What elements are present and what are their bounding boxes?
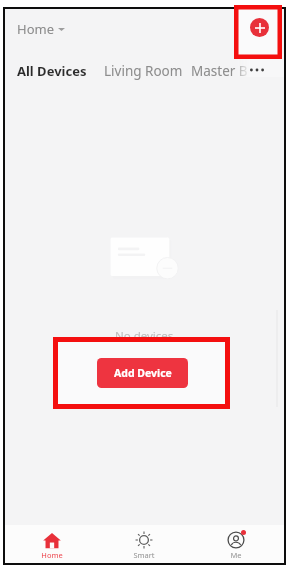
button[interactable]: Living Room	[104, 60, 183, 82]
staticText: Living Room	[104, 62, 183, 80]
button[interactable]: Home	[15, 531, 89, 563]
staticText: Home	[41, 550, 63, 560]
button[interactable]: All Devices	[17, 60, 87, 82]
button[interactable]: Add Device	[97, 358, 188, 388]
button[interactable]: More tabs	[236, 54, 284, 77]
button[interactable]: Add device	[250, 18, 269, 37]
staticText: Me	[230, 550, 242, 560]
button[interactable]: Master B	[191, 60, 248, 82]
staticText: Home	[17, 20, 54, 38]
staticText: All Devices	[17, 62, 87, 80]
button[interactable]: Smart	[107, 531, 181, 563]
button[interactable]: Home	[17, 20, 65, 38]
staticText: Master B	[191, 62, 248, 80]
staticText: No devices	[115, 328, 174, 344]
button[interactable]: Me	[199, 531, 273, 563]
staticText: Smart	[133, 550, 155, 560]
staticText: Add Device	[114, 366, 172, 380]
